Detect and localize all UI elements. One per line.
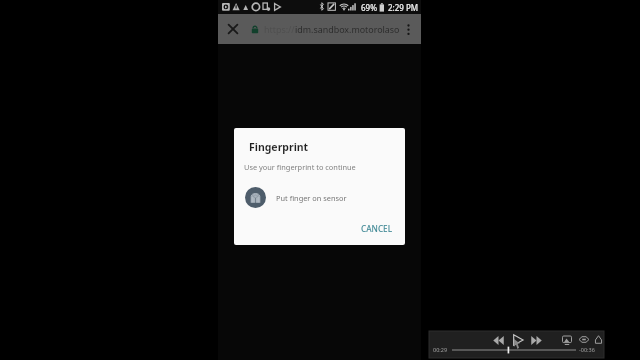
button[interactable]: Close [220, 14, 246, 44]
staticText: Use your fingerprint to continue [244, 162, 356, 172]
staticText: idm.sandbox.motorolaso [295, 23, 400, 35]
button[interactable]: Fast forward [528, 332, 545, 349]
button[interactable]: Rewind [490, 332, 507, 349]
staticText: CANCEL [361, 223, 393, 234]
button[interactable]: Play [509, 331, 527, 349]
staticText: 2:29 PM [388, 2, 419, 13]
staticText: 69% [361, 2, 377, 13]
staticText: Fingerprint [249, 140, 309, 154]
button[interactable]: Picture in picture [559, 332, 575, 348]
staticText: Put finger on sensor [276, 193, 347, 203]
button[interactable]: CANCEL [357, 220, 397, 237]
button[interactable]: More options [396, 14, 421, 44]
staticText: https:// [264, 23, 295, 35]
button[interactable]: Volume [591, 332, 606, 347]
staticText: 00:29 [433, 346, 448, 353]
staticText: -00:36 [579, 346, 595, 353]
button[interactable]: Cast [576, 332, 592, 348]
